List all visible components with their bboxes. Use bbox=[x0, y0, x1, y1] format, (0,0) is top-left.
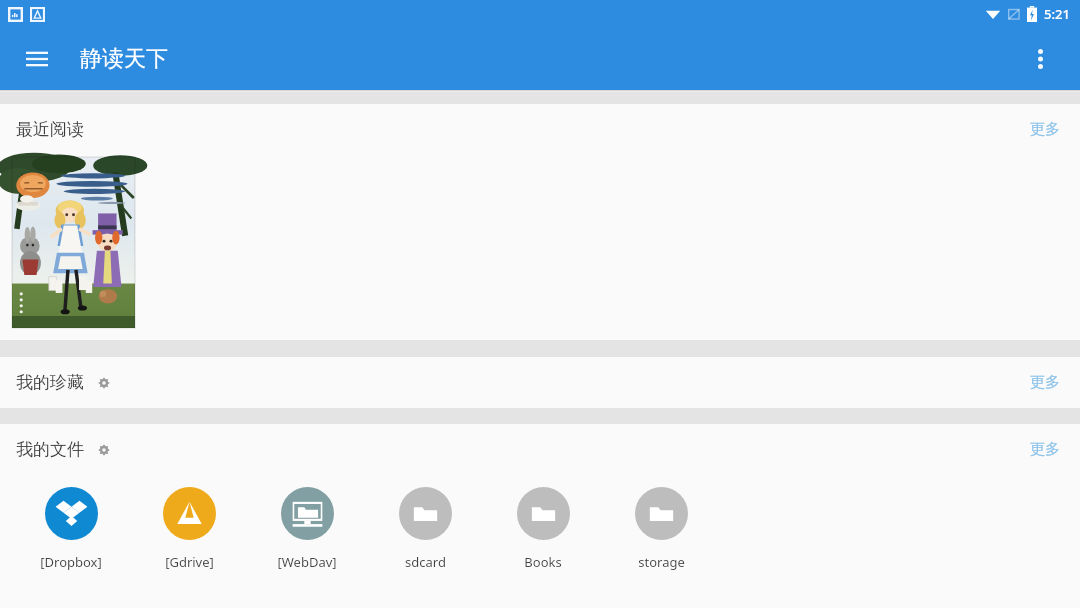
staticText: 我的珍藏 bbox=[16, 372, 84, 393]
staticText: sdcard bbox=[405, 553, 446, 571]
button[interactable]: Open navigation drawer bbox=[18, 40, 56, 78]
button[interactable]: 我的文件 settings bbox=[94, 440, 114, 460]
button[interactable]: 我的珍藏 settings bbox=[94, 373, 114, 393]
button[interactable]: sdcard bbox=[366, 483, 484, 575]
staticText: 更多 bbox=[1030, 373, 1060, 392]
staticText: 最近阅读 bbox=[16, 119, 84, 140]
button[interactable]: 更多 bbox=[1010, 430, 1080, 469]
staticText: 更多 bbox=[1030, 120, 1060, 139]
staticText: 更多 bbox=[1030, 440, 1060, 459]
button[interactable]: 更多 bbox=[1010, 363, 1080, 402]
staticText: [Dropbox] bbox=[40, 553, 102, 571]
button[interactable]: More options bbox=[1020, 39, 1060, 79]
staticText: [Gdrive] bbox=[165, 553, 214, 571]
staticText: 5:21 bbox=[1044, 5, 1070, 23]
button[interactable]: Books bbox=[484, 483, 602, 575]
staticText: 我的文件 bbox=[16, 439, 84, 460]
button[interactable]: storage bbox=[602, 483, 720, 575]
button[interactable]: [Dropbox] bbox=[12, 483, 130, 575]
staticText: Books bbox=[524, 553, 562, 571]
button[interactable]: 更多 bbox=[1010, 110, 1080, 149]
staticText: [WebDav] bbox=[277, 553, 337, 571]
button[interactable]: [WebDav] bbox=[248, 483, 366, 575]
button[interactable] bbox=[12, 157, 135, 328]
staticText: 静读天下 bbox=[80, 45, 168, 73]
button[interactable]: [Gdrive] bbox=[130, 483, 248, 575]
staticText: storage bbox=[638, 553, 685, 571]
